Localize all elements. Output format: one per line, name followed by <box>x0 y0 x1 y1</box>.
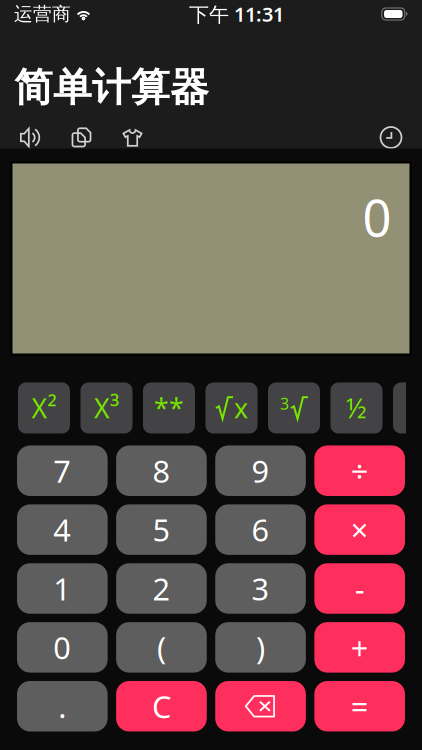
staticText: 0 <box>362 183 391 251</box>
button[interactable]: ) <box>215 622 306 673</box>
staticText: X² <box>31 390 56 426</box>
staticText: 2 <box>152 568 170 609</box>
button[interactable]: 4 <box>17 504 108 555</box>
button[interactable]: 1 <box>17 563 108 614</box>
button[interactable]: History <box>380 126 402 148</box>
staticText: x <box>234 390 248 426</box>
button[interactable]: 3 <box>215 563 306 614</box>
button[interactable]: C <box>116 681 207 731</box>
button[interactable]: Theme <box>122 126 173 148</box>
staticText: 0 <box>53 627 71 668</box>
staticText: 下午 11:31 <box>189 1 284 27</box>
staticText: C <box>152 686 171 727</box>
button[interactable]: ( <box>116 622 207 673</box>
button[interactable]: 5 <box>116 504 207 555</box>
staticText: ÷ <box>351 450 369 491</box>
button[interactable]: × <box>314 504 405 555</box>
staticText: 7 <box>53 450 71 491</box>
button[interactable]: ½ <box>330 382 382 433</box>
button[interactable]: ⅓ <box>393 382 422 433</box>
button[interactable]: 0 <box>17 622 108 673</box>
button[interactable]: - <box>314 563 405 614</box>
button[interactable]: 3 <box>268 382 320 433</box>
button[interactable]: 7 <box>17 445 108 496</box>
staticText: 运营商 <box>14 2 71 25</box>
button[interactable]: 6 <box>215 504 306 555</box>
staticText: ( <box>157 627 166 668</box>
staticText: 简单计算器 <box>14 64 209 111</box>
staticText: = <box>351 686 369 727</box>
button[interactable]: 2 <box>116 563 207 614</box>
staticText: 9 <box>252 450 270 491</box>
staticText: + <box>351 627 369 668</box>
staticText: . <box>58 686 66 727</box>
staticText: 3 <box>252 568 270 609</box>
button[interactable]: 8 <box>116 445 207 496</box>
staticText: - <box>355 568 365 609</box>
button[interactable]: 9 <box>215 445 306 496</box>
staticText: 4 <box>53 509 71 550</box>
button[interactable]: Delete <box>215 681 306 731</box>
staticText: ** <box>154 390 184 426</box>
button[interactable]: Copy <box>71 126 122 148</box>
staticText: X³ <box>94 390 119 426</box>
staticText: 5 <box>152 509 170 550</box>
staticText: 8 <box>152 450 170 491</box>
button[interactable]: ÷ <box>314 445 405 496</box>
button[interactable]: . <box>17 681 108 731</box>
staticText: 3 <box>280 393 289 414</box>
button[interactable]: + <box>314 622 405 673</box>
staticText: 6 <box>252 509 270 550</box>
staticText: 1 <box>53 568 71 609</box>
button[interactable]: ** <box>143 382 195 433</box>
button[interactable]: Sound <box>20 126 71 148</box>
staticText: ½ <box>346 390 367 426</box>
staticText: ) <box>256 627 265 668</box>
button[interactable]: X² <box>18 382 70 433</box>
button[interactable]: X³ <box>80 382 132 433</box>
button[interactable]: = <box>314 681 405 731</box>
staticText: × <box>351 509 369 550</box>
button[interactable]: x <box>205 382 257 433</box>
